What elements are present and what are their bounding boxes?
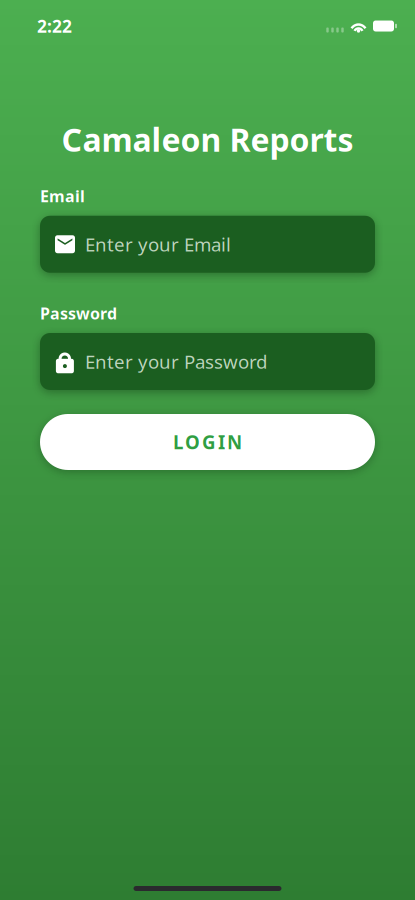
staticText: Email xyxy=(40,185,85,207)
button[interactable]: LOGIN xyxy=(40,414,375,470)
staticText: Password xyxy=(40,303,117,324)
staticText: 2:22 xyxy=(37,14,72,37)
button[interactable]: Enter your Password xyxy=(40,333,375,390)
staticText: Enter your Password xyxy=(85,349,267,374)
staticText: LOGIN xyxy=(173,430,242,454)
button[interactable]: Enter your Email xyxy=(40,216,375,273)
staticText: Enter your Email xyxy=(85,232,231,257)
staticText: Camaleon Reports xyxy=(61,118,353,160)
